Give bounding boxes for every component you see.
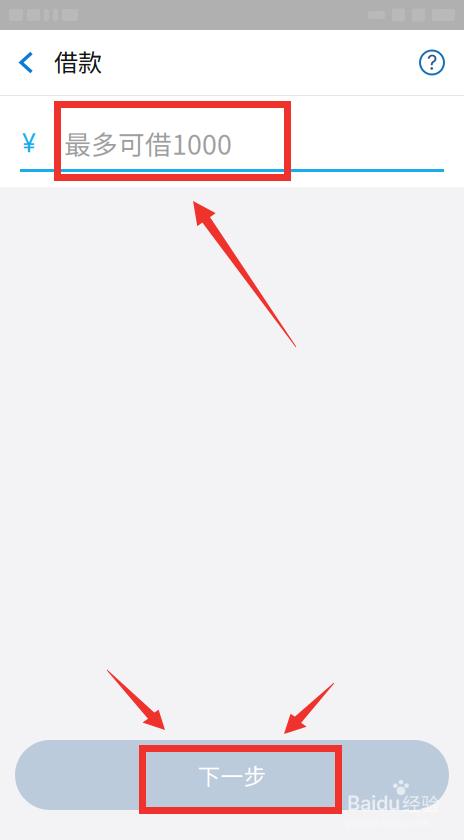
- button[interactable]: Help: [418, 30, 464, 95]
- staticText: 经验: [402, 790, 440, 817]
- staticText: Baidu: [347, 791, 400, 815]
- staticText: ¥: [22, 128, 36, 158]
- button[interactable]: Back: [0, 30, 102, 95]
- staticText: 最多可借1000: [64, 124, 232, 162]
- staticText: ?: [427, 50, 437, 75]
- staticText: 下一步: [197, 759, 266, 791]
- button[interactable]: 下一步: [15, 740, 449, 810]
- staticText: 借款: [54, 44, 102, 78]
